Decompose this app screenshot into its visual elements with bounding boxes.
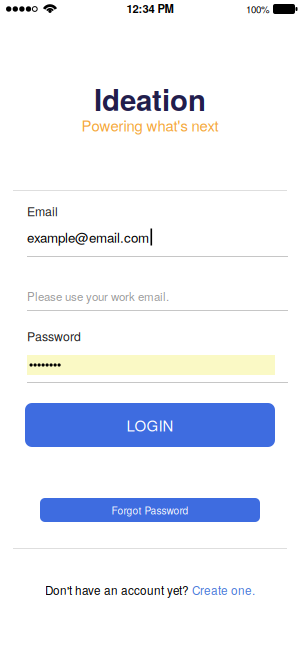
- staticText: Forgot Password: [111, 503, 188, 517]
- staticText: Password: [27, 327, 81, 345]
- button[interactable]: Don't have an account yet?: [45, 582, 255, 598]
- staticText: Don't have an account yet?: [45, 582, 192, 598]
- staticText: Ideation: [94, 78, 206, 120]
- staticText: Please use your work email.: [27, 288, 169, 304]
- staticText: Email: [27, 202, 58, 220]
- staticText: LOGIN: [126, 414, 173, 436]
- staticText: 100%: [246, 2, 270, 16]
- staticText: Create one.: [192, 582, 255, 598]
- staticText: 12:34 PM: [126, 0, 173, 16]
- button[interactable]: Forgot Password: [40, 498, 260, 522]
- staticText: Powering what's next: [81, 114, 218, 136]
- button[interactable]: LOGIN: [25, 403, 275, 447]
- staticText: example@email.com: [27, 227, 149, 247]
